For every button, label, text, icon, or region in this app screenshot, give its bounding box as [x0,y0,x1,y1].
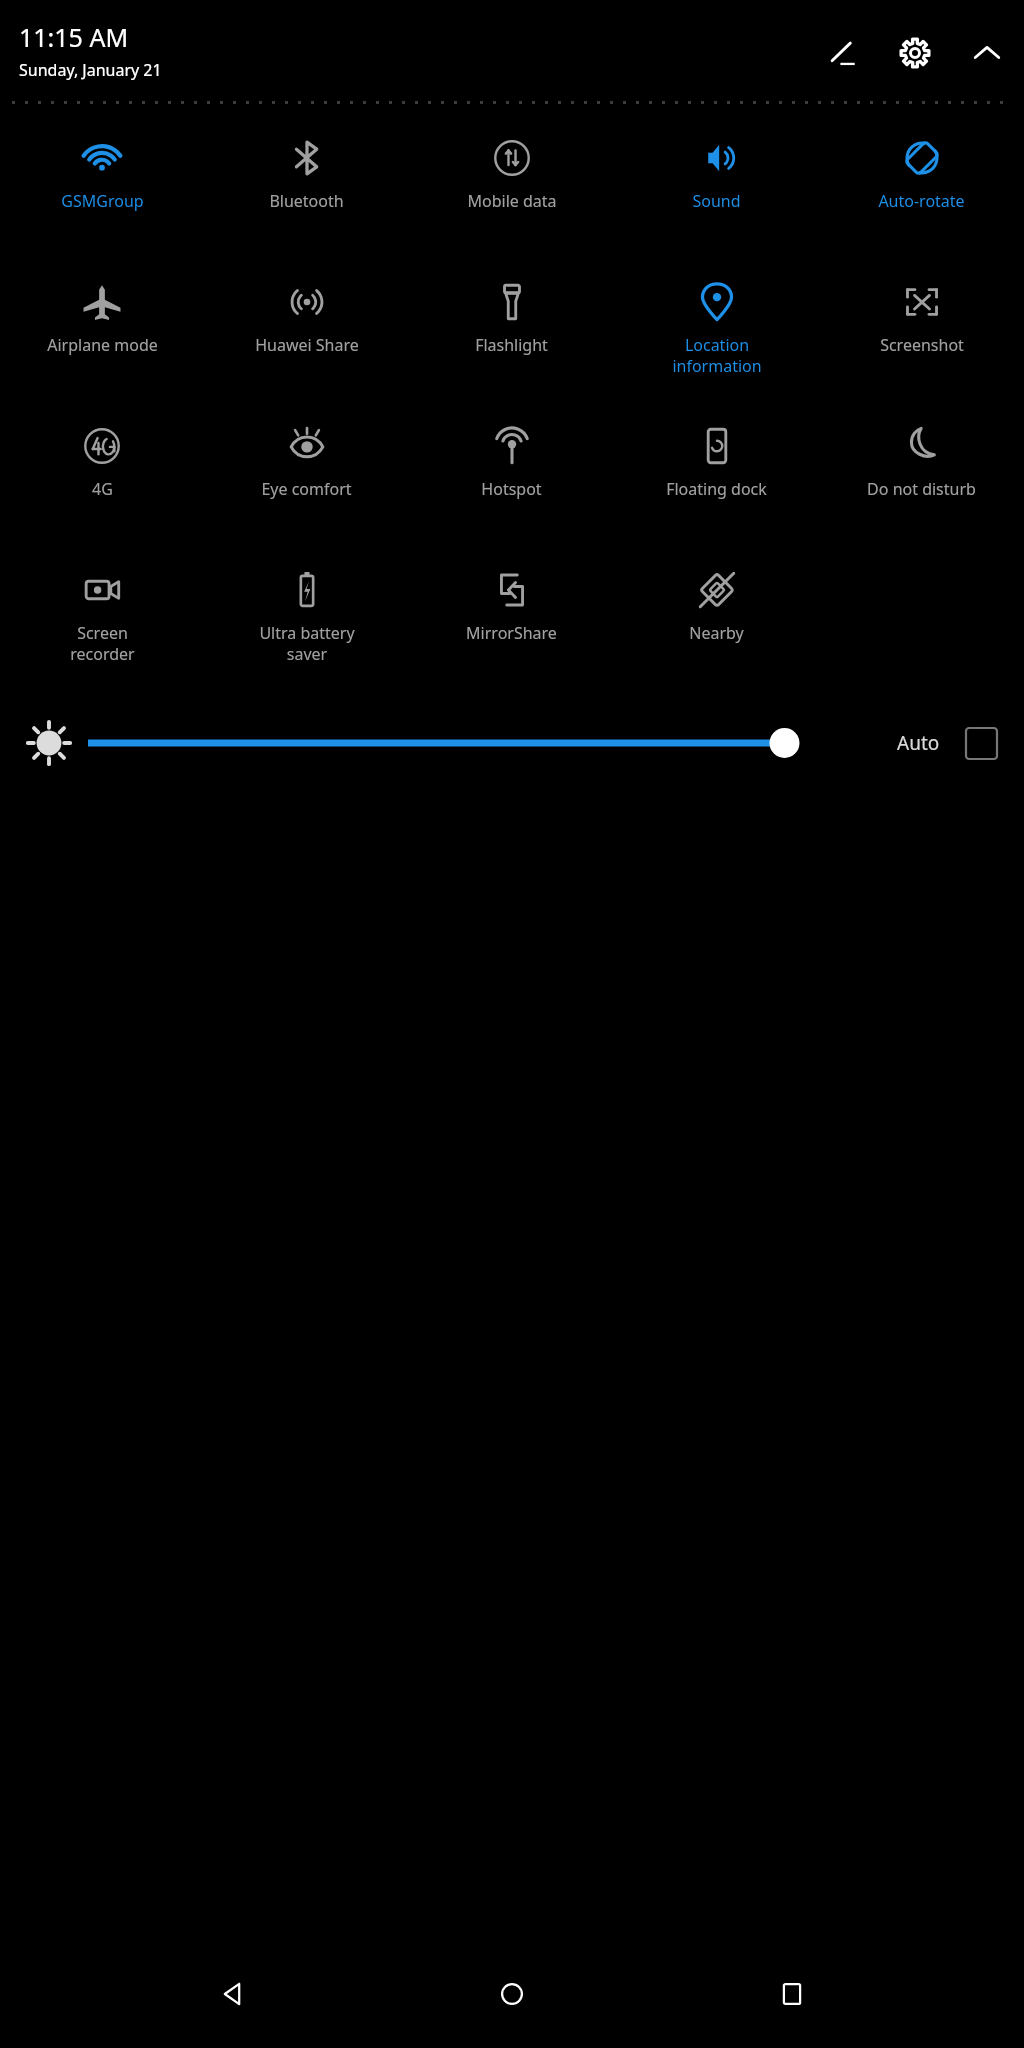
button[interactable]: Airplane mode [0,262,204,406]
button[interactable]: Home [464,1946,560,2042]
button[interactable]: Huawei Share [204,262,409,406]
staticText: Sunday, January 21 [19,59,162,81]
button[interactable]: 4G [0,406,204,550]
staticText: Bluetooth [269,190,344,212]
button[interactable]: Edit [820,30,866,76]
button[interactable]: Eye comfort [204,406,409,550]
staticText: 4G [92,478,113,500]
staticText: Nearby [689,622,744,644]
button[interactable]: Do not disturb [819,406,1024,550]
staticText: Hotspot [481,478,542,500]
button[interactable]: Screenshot [819,262,1024,406]
button[interactable]: Sound [614,118,819,262]
staticText: 11:15 AM [19,20,129,54]
button[interactable]: Bluetooth [204,118,409,262]
button[interactable]: Location information [614,262,819,406]
staticText: Screen recorder [70,622,135,665]
button[interactable]: Mobile data [409,118,614,262]
staticText: Sound [692,190,741,212]
button[interactable]: Floating dock [614,406,819,550]
button[interactable]: Hotspot [409,406,614,550]
staticText: GSMGroup [61,190,144,212]
button[interactable]: Auto-rotate [819,118,1024,262]
button[interactable]: MirrorShare [409,550,614,694]
staticText: Auto-rotate [878,190,965,212]
button[interactable]: Back [184,1946,280,2042]
button[interactable]: Auto brightness [956,718,1006,768]
staticText: Airplane mode [47,334,158,356]
staticText: Flashlight [475,334,548,356]
staticText: MirrorShare [466,622,557,644]
button[interactable]: Recent apps [744,1946,840,2042]
button[interactable]: Brightness slider [88,715,875,771]
staticText: Screenshot [880,334,964,356]
button[interactable]: GSMGroup [0,118,204,262]
button[interactable]: Nearby [614,550,819,694]
button[interactable]: Settings [892,30,938,76]
staticText: Huawei Share [255,334,359,356]
staticText: Auto [897,730,940,756]
staticText: Do not disturb [867,478,976,500]
button[interactable]: Collapse [964,30,1010,76]
staticText: Eye comfort [261,478,352,500]
staticText: Ultra battery saver [259,622,355,665]
staticText: Floating dock [666,478,767,500]
button[interactable]: Brightness [18,712,80,774]
button[interactable]: Ultra battery saver [204,550,409,694]
button[interactable]: Flashlight [409,262,614,406]
staticText: Mobile data [467,190,557,212]
button[interactable]: Screen recorder [0,550,204,694]
staticText: Location information [672,334,762,377]
